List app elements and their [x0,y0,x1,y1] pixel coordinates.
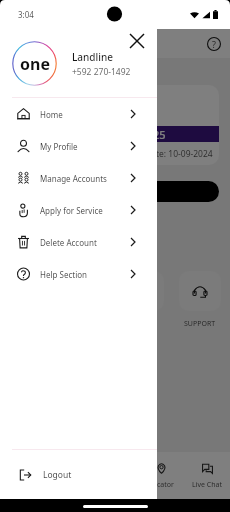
button[interactable]: Logout [0,450,157,499]
button[interactable]: Manage Accounts [0,162,157,194]
staticText: Home [13,480,33,490]
staticText: one [20,53,50,75]
button[interactable]: Home [0,452,46,499]
button[interactable]: SUPPORT [179,271,221,329]
staticText: Expire date: 10-09-2024 [119,148,213,160]
button[interactable]: My Profile [0,130,157,162]
button[interactable]: MY PLAN [66,271,108,329]
staticText: Live Chat [192,480,223,490]
staticText: ? [212,38,216,50]
staticText: Help Section [40,269,87,280]
button[interactable]: My Plan [46,452,92,499]
staticText: Hi, AKSHAY KUMAR U [42,37,144,51]
button[interactable]: Help Section [0,258,157,290]
button[interactable]: Live Chat [184,452,230,499]
button[interactable]: RECHARGE [11,181,219,202]
staticText: Apply for Service [40,205,103,216]
button[interactable]: TOP UP [9,271,51,329]
staticText: Delete Account [40,237,97,248]
button[interactable]: Help [206,36,222,52]
staticText: Logout [43,469,72,481]
staticText: Current Balance [21,97,82,108]
button[interactable]: Delete Account [0,226,157,258]
staticText: 3:04 [18,9,34,20]
staticText: Manage Accounts [40,173,107,184]
staticText: Home [40,109,63,120]
button[interactable]: Apply for Service [0,194,157,226]
button[interactable]: Close drawer [130,34,144,48]
button[interactable]: Locator [138,452,184,499]
staticText: +592 270-1492 [72,66,131,78]
button[interactable]: BILLS [122,271,164,329]
staticText: Locator [149,480,174,490]
staticText: GYD 8,125 [112,127,166,142]
button[interactable]: Home [0,98,157,130]
staticText: My Profile [40,141,78,152]
staticText: SUPPORT [184,319,216,329]
staticText: Landline [72,50,113,64]
